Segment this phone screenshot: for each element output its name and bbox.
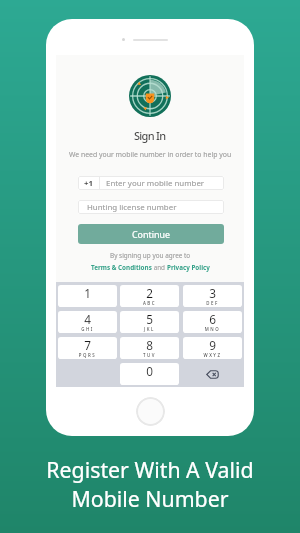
button[interactable]: 3 [183, 285, 242, 307]
staticText: 1 [58, 285, 117, 301]
staticText: 5 [120, 311, 179, 327]
button[interactable]: Privacy Policy [167, 263, 210, 272]
staticText: 2 [120, 285, 179, 301]
staticText: 6 [183, 311, 242, 327]
button[interactable]: Terms & Conditions [91, 263, 152, 272]
button[interactable]: +1 [78, 176, 224, 190]
staticText: 8 [120, 337, 179, 353]
button[interactable]: 5 [120, 311, 179, 333]
button[interactable]: 9 [183, 337, 242, 359]
staticText: ABC [120, 300, 179, 306]
staticText: DEF [183, 300, 242, 306]
staticText: +1 [84, 178, 93, 189]
staticText: By signing up you agree to [110, 251, 191, 260]
staticText: 0 [120, 363, 179, 379]
staticText: PQRS [58, 352, 117, 358]
staticText: 3 [183, 285, 242, 301]
button[interactable]: Hunting license number [78, 200, 224, 214]
staticText: GHI [58, 326, 117, 332]
staticText: WXYZ [183, 352, 242, 358]
staticText: We need your mobile number in order to h… [69, 150, 232, 159]
button[interactable]: 7 [58, 337, 117, 359]
button[interactable]: Continue [78, 224, 224, 244]
button[interactable]: 1 [58, 285, 117, 307]
staticText: TUV [120, 352, 179, 358]
staticText: Sign In [134, 128, 166, 143]
staticText: 9 [183, 337, 242, 353]
button[interactable]: 0 [120, 363, 179, 385]
staticText: 4 [58, 311, 117, 327]
staticText: JKL [120, 326, 179, 332]
staticText: 7 [58, 337, 117, 353]
staticText: MNO [183, 326, 242, 332]
button[interactable]: Backspace [183, 363, 242, 385]
button[interactable]: 2 [120, 285, 179, 307]
staticText: Hunting license number [87, 202, 177, 213]
staticText: Enter your mobile number [106, 178, 205, 189]
button[interactable]: 6 [183, 311, 242, 333]
staticText: and [152, 263, 167, 272]
staticText: Register With A Valid Mobile Number [0, 455, 300, 513]
staticText: Continue [132, 228, 170, 240]
button[interactable]: 8 [120, 337, 179, 359]
button[interactable]: 4 [58, 311, 117, 333]
